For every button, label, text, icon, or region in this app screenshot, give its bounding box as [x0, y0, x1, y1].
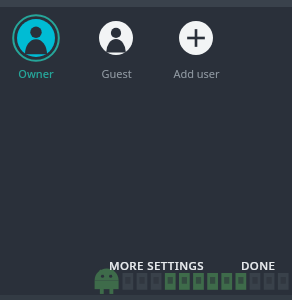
button[interactable]: Owner [9, 14, 63, 81]
staticText: DONE [241, 258, 276, 274]
button[interactable]: Add user [165, 14, 227, 81]
button[interactable]: MORE SETTINGS [103, 254, 211, 278]
staticText: Add user [173, 66, 220, 81]
staticText: Owner [18, 66, 54, 81]
staticText: Guest [101, 66, 132, 81]
button[interactable]: Guest [89, 14, 143, 81]
button[interactable]: DONE [235, 254, 282, 278]
staticText: MORE SETTINGS [109, 258, 205, 274]
